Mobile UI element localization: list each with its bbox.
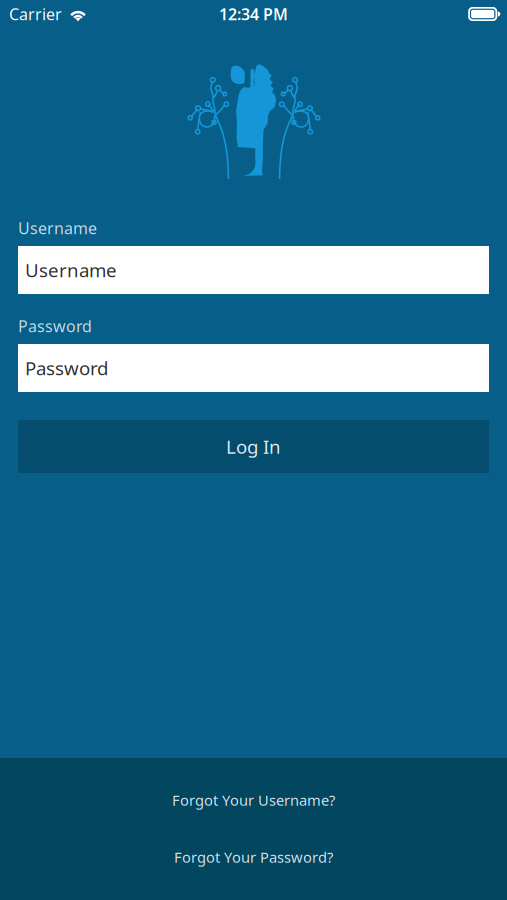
staticText: Forgot Your Username? xyxy=(172,790,335,810)
button[interactable]: Password xyxy=(18,344,489,392)
staticText: 12:34 PM xyxy=(219,3,288,25)
staticText: Password xyxy=(18,315,92,337)
button[interactable]: Log In xyxy=(18,420,489,473)
staticText: Log In xyxy=(226,434,281,459)
staticText: Forgot Your Password? xyxy=(174,847,333,867)
button[interactable]: Username xyxy=(18,246,489,294)
button[interactable]: Forgot Your Password? xyxy=(0,849,507,865)
staticText: Carrier xyxy=(9,3,62,25)
staticText: Password xyxy=(25,356,108,380)
staticText: Username xyxy=(18,217,97,239)
button[interactable]: Forgot Your Username? xyxy=(0,792,507,808)
staticText: Username xyxy=(25,258,117,282)
